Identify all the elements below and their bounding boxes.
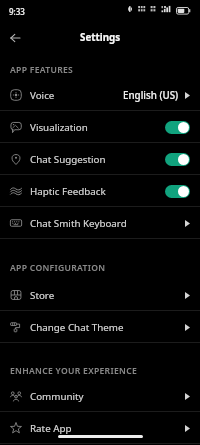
button[interactable]: Chat Suggestion xyxy=(0,143,200,175)
button[interactable]: Store xyxy=(0,279,200,311)
button[interactable]: Rate App xyxy=(0,412,200,444)
staticText: Rate App xyxy=(30,422,72,435)
staticText: Haptic Feedback xyxy=(30,185,106,198)
staticText: Chat Smith Keyboard xyxy=(30,217,127,230)
button[interactable]: Voice xyxy=(0,79,200,111)
staticText: APP FEATURES xyxy=(10,64,74,76)
staticText: Store xyxy=(30,289,55,302)
button[interactable]: Back xyxy=(5,28,24,47)
button[interactable]: Haptic Feedback xyxy=(0,175,200,207)
staticText: English (US) xyxy=(123,89,179,102)
button[interactable]: Visualization xyxy=(0,111,200,143)
button[interactable]: Change Chat Theme xyxy=(0,311,200,343)
staticText: ENHANCE YOUR EXPERIENCE xyxy=(10,365,138,377)
staticText: Settings xyxy=(80,31,121,44)
button[interactable]: Community xyxy=(0,380,200,412)
staticText: 9:33 xyxy=(9,6,25,17)
staticText: Visualization xyxy=(30,121,88,134)
staticText: Community xyxy=(30,390,84,403)
staticText: Voice xyxy=(30,89,55,102)
staticText: Change Chat Theme xyxy=(30,321,124,334)
button[interactable]: Chat Smith Keyboard xyxy=(0,207,200,239)
staticText: Chat Suggestion xyxy=(30,153,106,166)
staticText: APP CONFIGURATION xyxy=(10,262,106,274)
